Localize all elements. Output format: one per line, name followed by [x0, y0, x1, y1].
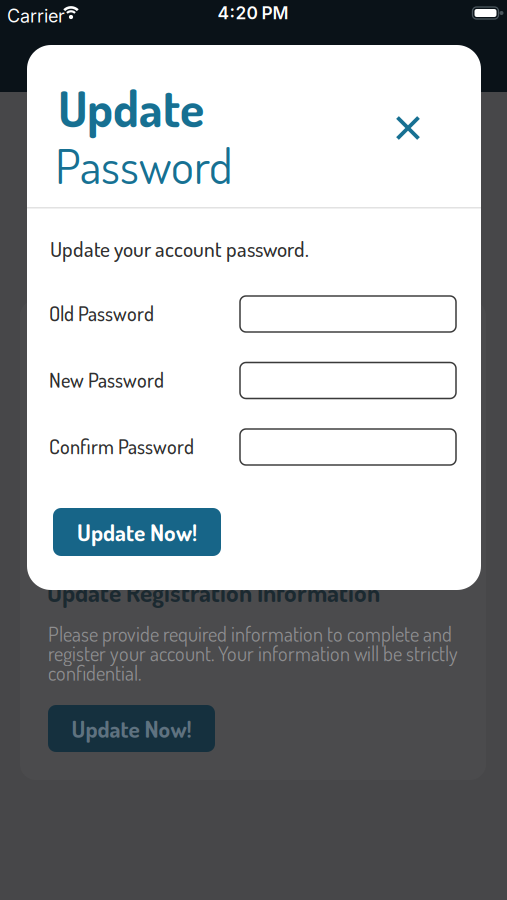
button[interactable]: Update Now! — [48, 705, 215, 752]
staticText: Old Password — [49, 300, 154, 326]
staticText: confidential. — [48, 660, 141, 686]
staticText: Please provide required information to c… — [48, 621, 452, 647]
button[interactable]: Close — [387, 107, 428, 148]
staticText: Update Now! — [71, 714, 191, 743]
staticText: Password — [55, 134, 233, 195]
staticText: Update Registration Information — [47, 576, 380, 608]
button[interactable]: Update Now! — [53, 508, 221, 556]
staticText: New Password — [49, 367, 164, 393]
staticText: 4:20 PM — [217, 2, 288, 23]
staticText: Confirm Password — [49, 433, 194, 459]
staticText: Update Now! — [77, 517, 197, 547]
button[interactable]: Old Password — [240, 296, 456, 332]
button[interactable]: New Password — [240, 362, 456, 398]
staticText: Carrier — [7, 5, 65, 27]
staticText: register your account. Your information … — [48, 640, 458, 666]
staticText: Update your account password. — [50, 235, 309, 262]
staticText: Update — [58, 76, 204, 139]
button[interactable]: Confirm Password — [240, 429, 456, 465]
